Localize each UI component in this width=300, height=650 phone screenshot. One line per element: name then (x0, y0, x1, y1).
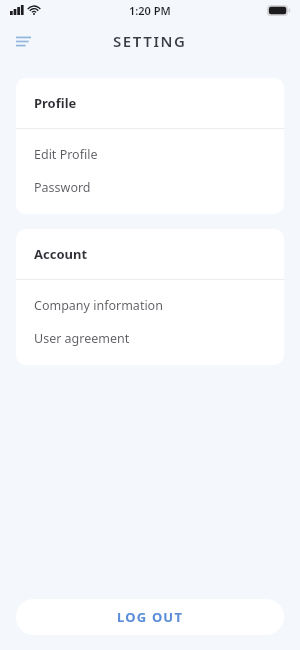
staticText: Account (34, 245, 88, 263)
staticText: Password (34, 179, 91, 196)
button[interactable]: Edit Profile (16, 138, 284, 171)
button[interactable]: Password (16, 171, 284, 204)
button[interactable]: User agreement (16, 322, 284, 355)
staticText: User agreement (34, 330, 130, 347)
staticText: 1:20 PM (129, 3, 171, 18)
staticText: LOG OUT (117, 608, 184, 626)
staticText: Edit Profile (34, 146, 98, 163)
button[interactable]: Company information (16, 289, 284, 322)
button[interactable]: Menu (8, 26, 38, 56)
button[interactable]: LOG OUT (16, 599, 284, 635)
staticText: Company information (34, 297, 163, 314)
staticText: SETTING (113, 31, 187, 51)
staticText: Profile (34, 94, 77, 112)
